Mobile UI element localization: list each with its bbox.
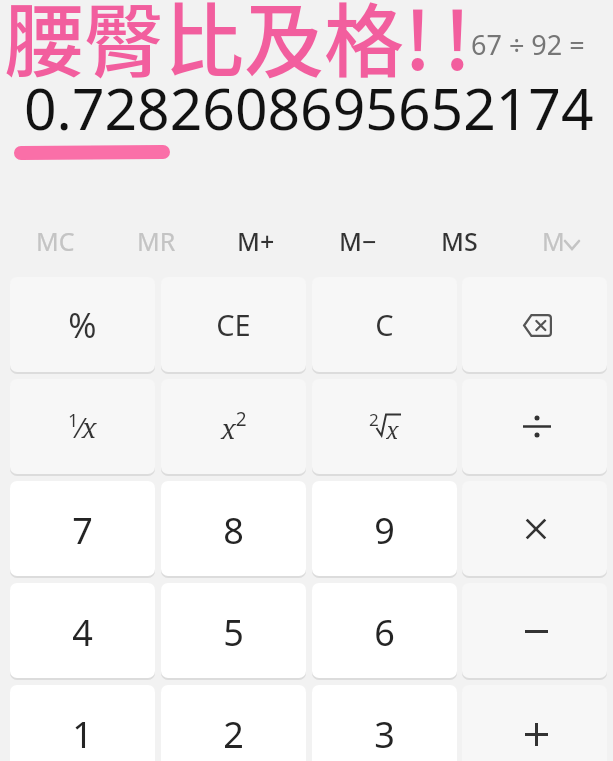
button[interactable]: One divided by x	[10, 379, 155, 474]
button[interactable]: MR	[105, 216, 207, 266]
button[interactable]: 3	[312, 685, 457, 761]
button[interactable]: 8	[161, 481, 306, 576]
button[interactable]: Multiply	[462, 481, 607, 576]
button[interactable]: %	[10, 277, 155, 372]
staticText: x2	[221, 406, 247, 447]
staticText: 1	[72, 710, 93, 759]
staticText: 5	[223, 608, 244, 657]
staticText: 4	[72, 608, 93, 657]
staticText: MR	[137, 224, 176, 258]
button[interactable]: 5	[161, 583, 306, 678]
button[interactable]: 7	[10, 481, 155, 576]
button[interactable]: M+	[205, 216, 307, 266]
button[interactable]: Square root of x	[312, 379, 457, 474]
staticText: 9	[374, 506, 395, 555]
staticText: 0.7282608695652174	[24, 69, 594, 147]
button[interactable]: C	[312, 277, 457, 372]
staticText: 2	[223, 710, 244, 759]
staticText: 3	[374, 710, 395, 759]
staticText: 67 ÷ 92 =	[471, 26, 585, 63]
staticText: C	[375, 305, 394, 344]
button[interactable]: 4	[10, 583, 155, 678]
staticText: 7	[72, 506, 93, 555]
staticText: 8	[223, 506, 244, 555]
staticText: 2	[369, 408, 379, 431]
button[interactable]: Minus	[462, 583, 607, 678]
staticText: MC	[36, 224, 75, 258]
staticText: 6	[374, 608, 395, 657]
staticText: 1⁄x	[68, 408, 97, 446]
button[interactable]: CE	[161, 277, 306, 372]
button[interactable]: 2	[161, 685, 306, 761]
staticText: MS	[441, 224, 478, 258]
button[interactable]: 6	[312, 583, 457, 678]
button[interactable]: MS	[408, 216, 510, 266]
button[interactable]: Divide	[462, 379, 607, 474]
staticText: 腰臀比及格!!	[4, 0, 483, 93]
button[interactable]: MC	[4, 216, 106, 266]
staticText: CE	[216, 305, 251, 344]
button[interactable]: Memory list	[510, 216, 612, 266]
button[interactable]: x squared	[161, 379, 306, 474]
staticText: x	[386, 414, 399, 440]
button[interactable]: Backspace	[462, 277, 607, 372]
staticText: M−	[339, 224, 377, 258]
staticText: M+	[237, 224, 275, 258]
button[interactable]: M−	[307, 216, 409, 266]
staticText: %	[68, 302, 97, 348]
button[interactable]: Plus	[462, 685, 607, 761]
button[interactable]: 9	[312, 481, 457, 576]
button[interactable]: 1	[10, 685, 155, 761]
staticText: M	[542, 224, 565, 258]
